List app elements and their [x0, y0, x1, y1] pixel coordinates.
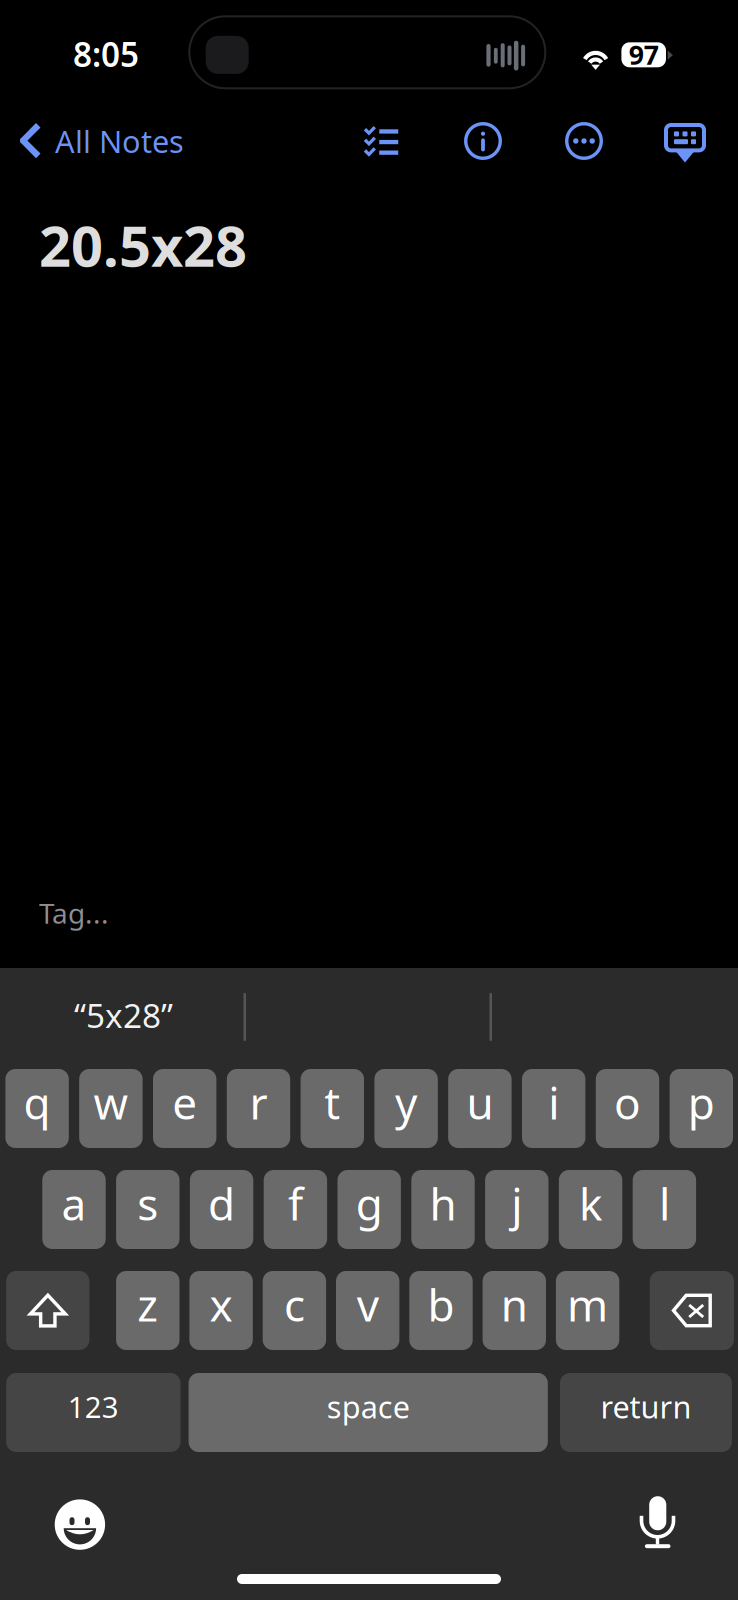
staticText: 123	[68, 1387, 119, 1426]
staticText: d	[208, 1174, 235, 1233]
button[interactable]: Delete	[650, 1271, 734, 1350]
button[interactable]: z	[116, 1271, 179, 1350]
staticText: “5x28”	[74, 993, 173, 1037]
staticText: return	[600, 1386, 691, 1427]
button[interactable]: d	[190, 1170, 253, 1249]
staticText: c	[284, 1275, 305, 1334]
button[interactable]: e	[153, 1069, 216, 1148]
staticText: s	[137, 1174, 158, 1233]
button[interactable]: q	[5, 1069, 69, 1148]
staticText: p	[688, 1073, 715, 1132]
staticText: n	[501, 1275, 528, 1334]
staticText: e	[172, 1073, 197, 1132]
button[interactable]: b	[409, 1271, 473, 1350]
button[interactable]: v	[336, 1271, 399, 1350]
button[interactable]: m	[556, 1271, 619, 1350]
staticText: z	[137, 1275, 158, 1334]
button[interactable]: f	[264, 1170, 327, 1249]
button[interactable]: h	[411, 1170, 475, 1249]
button[interactable]: s	[116, 1170, 179, 1249]
staticText: l	[659, 1174, 670, 1233]
button[interactable]: p	[670, 1069, 733, 1148]
button[interactable]: 123	[6, 1373, 180, 1452]
staticText: a	[61, 1174, 86, 1233]
staticText: y	[395, 1073, 417, 1132]
staticText: t	[324, 1073, 340, 1132]
staticText: space	[327, 1386, 410, 1427]
staticText: 20.5x28	[39, 208, 247, 282]
staticText: x	[210, 1275, 233, 1334]
button[interactable]: c	[263, 1271, 326, 1350]
button[interactable]: j	[485, 1170, 548, 1249]
staticText: u	[466, 1073, 493, 1132]
staticText: k	[579, 1174, 602, 1233]
staticText: w	[93, 1073, 128, 1132]
staticText: m	[567, 1275, 608, 1334]
staticText: r	[249, 1073, 267, 1132]
button[interactable]: i	[522, 1069, 585, 1148]
staticText: f	[288, 1174, 303, 1233]
button[interactable]: Shift	[6, 1271, 89, 1350]
button[interactable]: Note Info	[464, 122, 502, 160]
button[interactable]: k	[559, 1170, 622, 1249]
button[interactable]: Dictate	[640, 1496, 675, 1549]
button[interactable]: a	[42, 1170, 106, 1249]
button[interactable]: g	[337, 1170, 401, 1249]
staticText: o	[614, 1073, 641, 1132]
button[interactable]: n	[483, 1271, 546, 1350]
button[interactable]: o	[596, 1069, 659, 1148]
staticText: 8:05	[73, 32, 139, 76]
button[interactable]: Hide Keyboard	[666, 125, 704, 163]
button[interactable]: l	[633, 1170, 696, 1249]
staticText: h	[429, 1174, 456, 1233]
staticText: g	[356, 1174, 383, 1233]
staticText: j	[511, 1174, 522, 1233]
staticText: q	[24, 1073, 51, 1132]
button[interactable]: More	[565, 122, 603, 160]
staticText: i	[548, 1073, 559, 1132]
button[interactable]: Checklist	[364, 126, 398, 156]
button[interactable]: Emoji	[55, 1499, 105, 1550]
staticText: Tag...	[39, 894, 109, 932]
button[interactable]: return	[560, 1373, 732, 1452]
staticText: All Notes	[55, 121, 184, 161]
button[interactable]: w	[79, 1069, 143, 1148]
button[interactable]: r	[227, 1069, 290, 1148]
staticText: 97	[629, 37, 659, 72]
staticText: b	[427, 1275, 454, 1334]
staticText: v	[357, 1275, 379, 1334]
button[interactable]: All Notes	[20, 121, 235, 161]
button[interactable]: u	[448, 1069, 512, 1148]
button[interactable]: space	[189, 1373, 548, 1452]
button[interactable]: y	[374, 1069, 438, 1148]
button[interactable]: t	[301, 1069, 364, 1148]
button[interactable]: x	[189, 1271, 253, 1350]
